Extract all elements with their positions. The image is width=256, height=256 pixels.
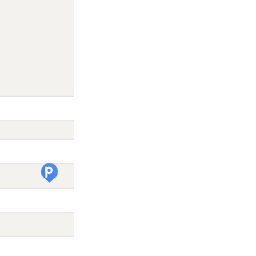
button[interactable]: Place bbox=[0, 120, 74, 140]
button[interactable]: Directions bbox=[0, 212, 74, 237]
button[interactable]: Parking marker bbox=[41, 163, 58, 183]
button[interactable]: Saved parking bbox=[0, 163, 74, 189]
